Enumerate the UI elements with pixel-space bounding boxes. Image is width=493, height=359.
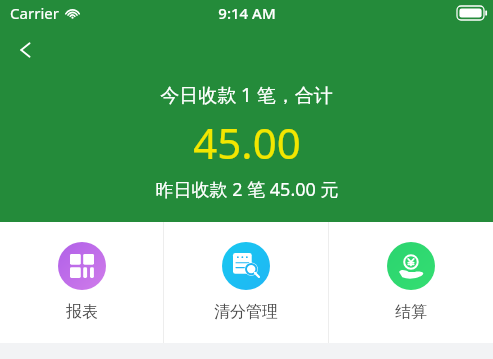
staticText: 昨日收款 2 笔 45.00 元: [155, 177, 339, 202]
button[interactable]: 清分管理: [164, 222, 328, 343]
staticText: Carrier: [10, 3, 59, 23]
staticText: 报表: [66, 302, 98, 322]
button[interactable]: Back: [6, 30, 46, 70]
staticText: 9:14 AM: [218, 3, 276, 23]
button[interactable]: 结算: [329, 222, 493, 343]
staticText: 结算: [395, 302, 427, 322]
button[interactable]: 报表: [0, 222, 163, 343]
staticText: 45.00: [193, 114, 301, 171]
staticText: 清分管理: [214, 302, 278, 322]
staticText: 今日收款 1 笔，合计: [160, 82, 333, 108]
